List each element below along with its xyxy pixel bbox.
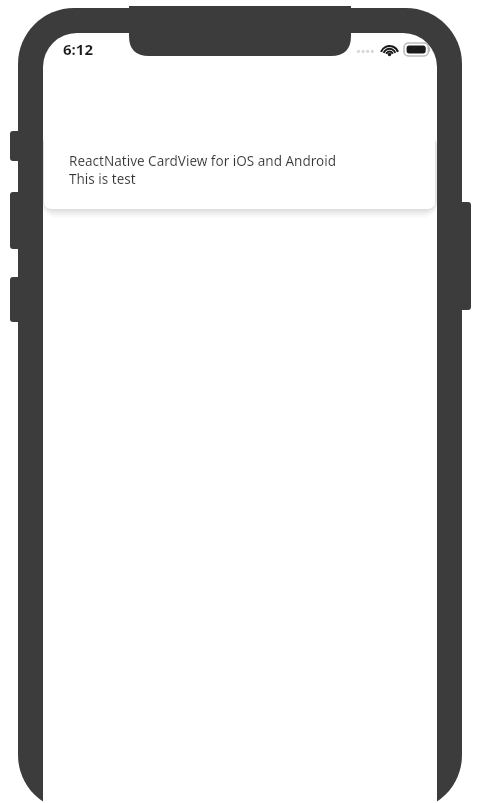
staticText: ReactNative CardView for iOS and Android [69, 152, 336, 170]
other: Volume down [10, 277, 22, 322]
other: Silent switch [10, 131, 22, 161]
button[interactable]: ReactNative CardView for iOS and Android [44, 131, 435, 209]
other: Power [458, 202, 471, 310]
staticText: 6:12 [63, 39, 93, 59]
other: Volume up [10, 192, 22, 249]
staticText: This is test [69, 170, 136, 188]
